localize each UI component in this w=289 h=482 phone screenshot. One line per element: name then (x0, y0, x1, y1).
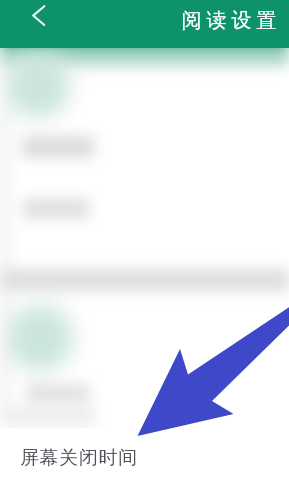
button[interactable]: Back (0, 0, 56, 48)
staticText: 屏幕关闭时间 (20, 446, 138, 470)
staticText: 阅读设置 (179, 8, 279, 33)
button[interactable]: 屏幕关闭时间 (0, 428, 289, 482)
